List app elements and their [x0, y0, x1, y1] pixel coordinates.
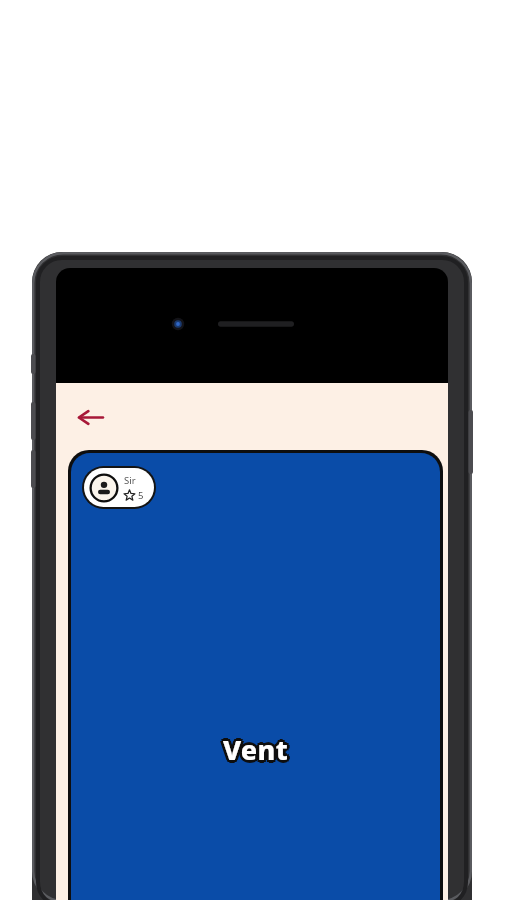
button[interactable]: Sir	[84, 468, 154, 507]
staticText: Vent	[223, 729, 288, 766]
staticText: Vent	[221, 729, 286, 766]
staticText: Vent	[223, 731, 288, 768]
staticText: Vent	[221, 731, 286, 768]
staticText: Vent	[226, 731, 291, 768]
staticText: Vent	[220, 731, 285, 768]
button[interactable]: Back	[67, 394, 113, 440]
staticText: Vent	[225, 731, 290, 768]
button[interactable]: Sir	[68, 450, 443, 900]
staticText: Sir	[124, 474, 136, 487]
staticText: Vent	[225, 733, 290, 770]
staticText: 5	[138, 489, 144, 502]
staticText: Vent	[223, 733, 288, 770]
staticText: Vent	[221, 733, 286, 770]
staticText: Vent	[225, 729, 290, 766]
staticText: Vent	[223, 728, 288, 765]
staticText: Vent	[223, 734, 288, 771]
